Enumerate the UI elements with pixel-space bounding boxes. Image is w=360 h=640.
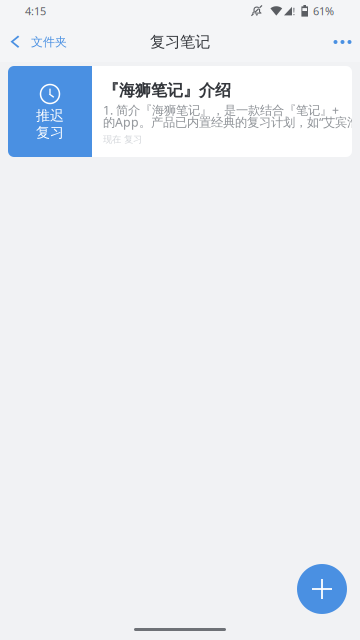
staticText: 现在 复习 [103, 134, 142, 145]
staticText: 4:15 [25, 4, 46, 18]
staticText: 推迟 [36, 107, 64, 124]
staticText: 『海狮笔记』介绍 [103, 80, 231, 101]
button[interactable]: 推迟 [8, 66, 352, 157]
staticText: 复习笔记 [150, 32, 210, 52]
staticText: 复习 [36, 124, 64, 141]
staticText: 的App。产品已内置经典的复习计划，如“艾宾浩斯记忆 [103, 114, 360, 130]
staticText: 1. 简介『海狮笔记』，是一款结合『笔记』+ [103, 102, 339, 118]
button[interactable]: 文件夹 [0, 22, 77, 62]
button[interactable]: More [325, 22, 360, 62]
staticText: 61% [313, 4, 334, 18]
staticText: 文件夹 [31, 34, 67, 49]
button[interactable]: New note [297, 564, 347, 614]
